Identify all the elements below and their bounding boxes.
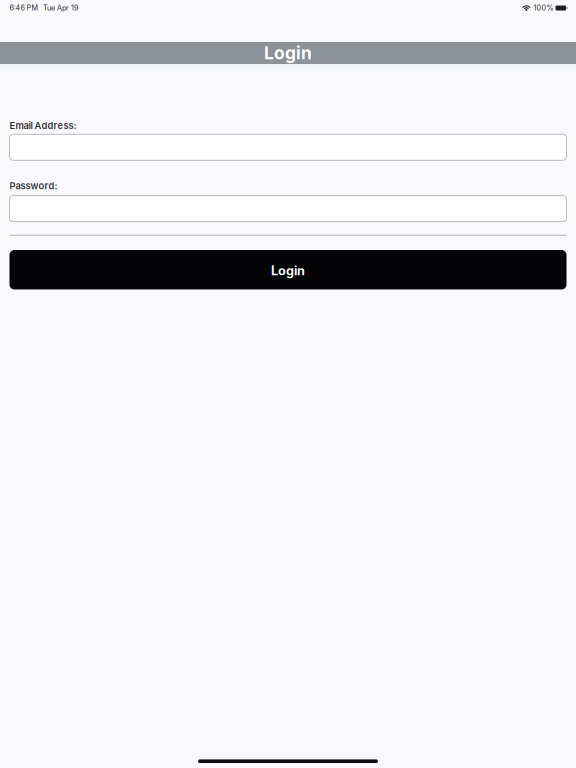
staticText: Tue Apr 19 (43, 4, 78, 12)
button[interactable]: Login (9, 250, 566, 289)
staticText: 100% (533, 4, 553, 12)
staticText: Login (271, 263, 305, 278)
staticText: Password: (9, 180, 57, 192)
staticText: Login (264, 42, 312, 63)
staticText: 6:46 PM (9, 4, 38, 12)
button[interactable]: Password (9, 196, 566, 222)
button[interactable]: Email Address (9, 134, 566, 160)
staticText: Email Address: (9, 120, 76, 131)
